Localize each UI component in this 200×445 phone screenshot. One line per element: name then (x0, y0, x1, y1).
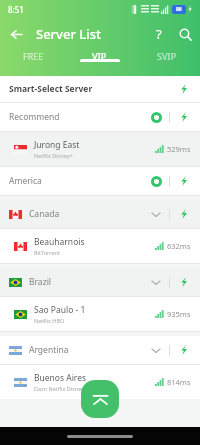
button[interactable]: Expand (150, 344, 162, 356)
button[interactable]: Sao Paulo - 1 (0, 297, 200, 331)
button[interactable]: Buenos Aires (0, 365, 200, 399)
staticText: Brazil (29, 276, 52, 288)
staticText: 935ms (167, 309, 191, 319)
button[interactable]: Search (172, 21, 198, 47)
staticText: Dazn Netflix Disney+ Prime (34, 385, 104, 392)
button[interactable]: Beauharnois (0, 229, 200, 263)
staticText: America (9, 175, 42, 187)
staticText: 814ms (167, 377, 191, 387)
staticText: Sao Paulo - 1 (34, 304, 86, 316)
button[interactable]: Recommend (0, 103, 200, 131)
staticText: Server List (36, 25, 102, 43)
staticText: 632ms (167, 241, 191, 251)
button[interactable]: America (0, 167, 200, 195)
button[interactable]: Protected (151, 112, 162, 123)
button[interactable]: Brazil (0, 268, 200, 296)
button[interactable]: Quick connect (177, 207, 191, 221)
button[interactable]: Scroll to top (81, 380, 119, 418)
button[interactable]: Expand (150, 208, 162, 220)
button[interactable]: Quick connect (177, 110, 191, 124)
staticText: Buenos Aires (34, 372, 87, 384)
staticText: 8:51 (8, 4, 24, 15)
button[interactable]: SVIP (133, 50, 200, 62)
staticText: ? (156, 25, 162, 43)
button[interactable]: Quick connect (177, 174, 191, 188)
staticText: BitTorrent (34, 249, 60, 256)
button[interactable]: Expand (150, 276, 162, 288)
button[interactable]: Canada (0, 200, 200, 228)
button[interactable]: Help (146, 21, 172, 47)
button[interactable]: Jurong East (0, 132, 200, 166)
button[interactable]: FREE (0, 50, 66, 62)
button[interactable]: Quick connect (177, 82, 191, 96)
staticText: FREE (23, 50, 44, 62)
staticText: Recommend (9, 111, 60, 123)
button[interactable]: Argentina (0, 336, 200, 364)
button[interactable]: Back (0, 18, 32, 50)
staticText: Jurong East (34, 139, 80, 151)
button[interactable]: Smart-Select Server (0, 76, 200, 102)
staticText: 86 (176, 6, 182, 13)
staticText: SVIP (157, 50, 176, 62)
staticText: Beauharnois (34, 236, 85, 248)
staticText: 529ms (167, 144, 191, 154)
staticText: Smart-Select Server (9, 83, 93, 95)
button[interactable]: Quick connect (177, 275, 191, 289)
staticText: VIP (92, 50, 107, 62)
button[interactable]: Quick connect (177, 343, 191, 357)
staticText: Netflix HBO (34, 317, 65, 324)
button[interactable]: Protected (151, 176, 162, 187)
button[interactable]: VIP (66, 50, 133, 62)
staticText: Argentina (29, 344, 69, 356)
staticText: Canada (29, 208, 60, 220)
staticText: Netflix Disney+ (34, 152, 73, 159)
